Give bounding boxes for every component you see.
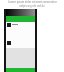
staticText: adipiscing elit sed do <box>19 4 45 8</box>
staticText: Lorem ipsum dolor sit amet consectetur <box>8 0 57 4</box>
